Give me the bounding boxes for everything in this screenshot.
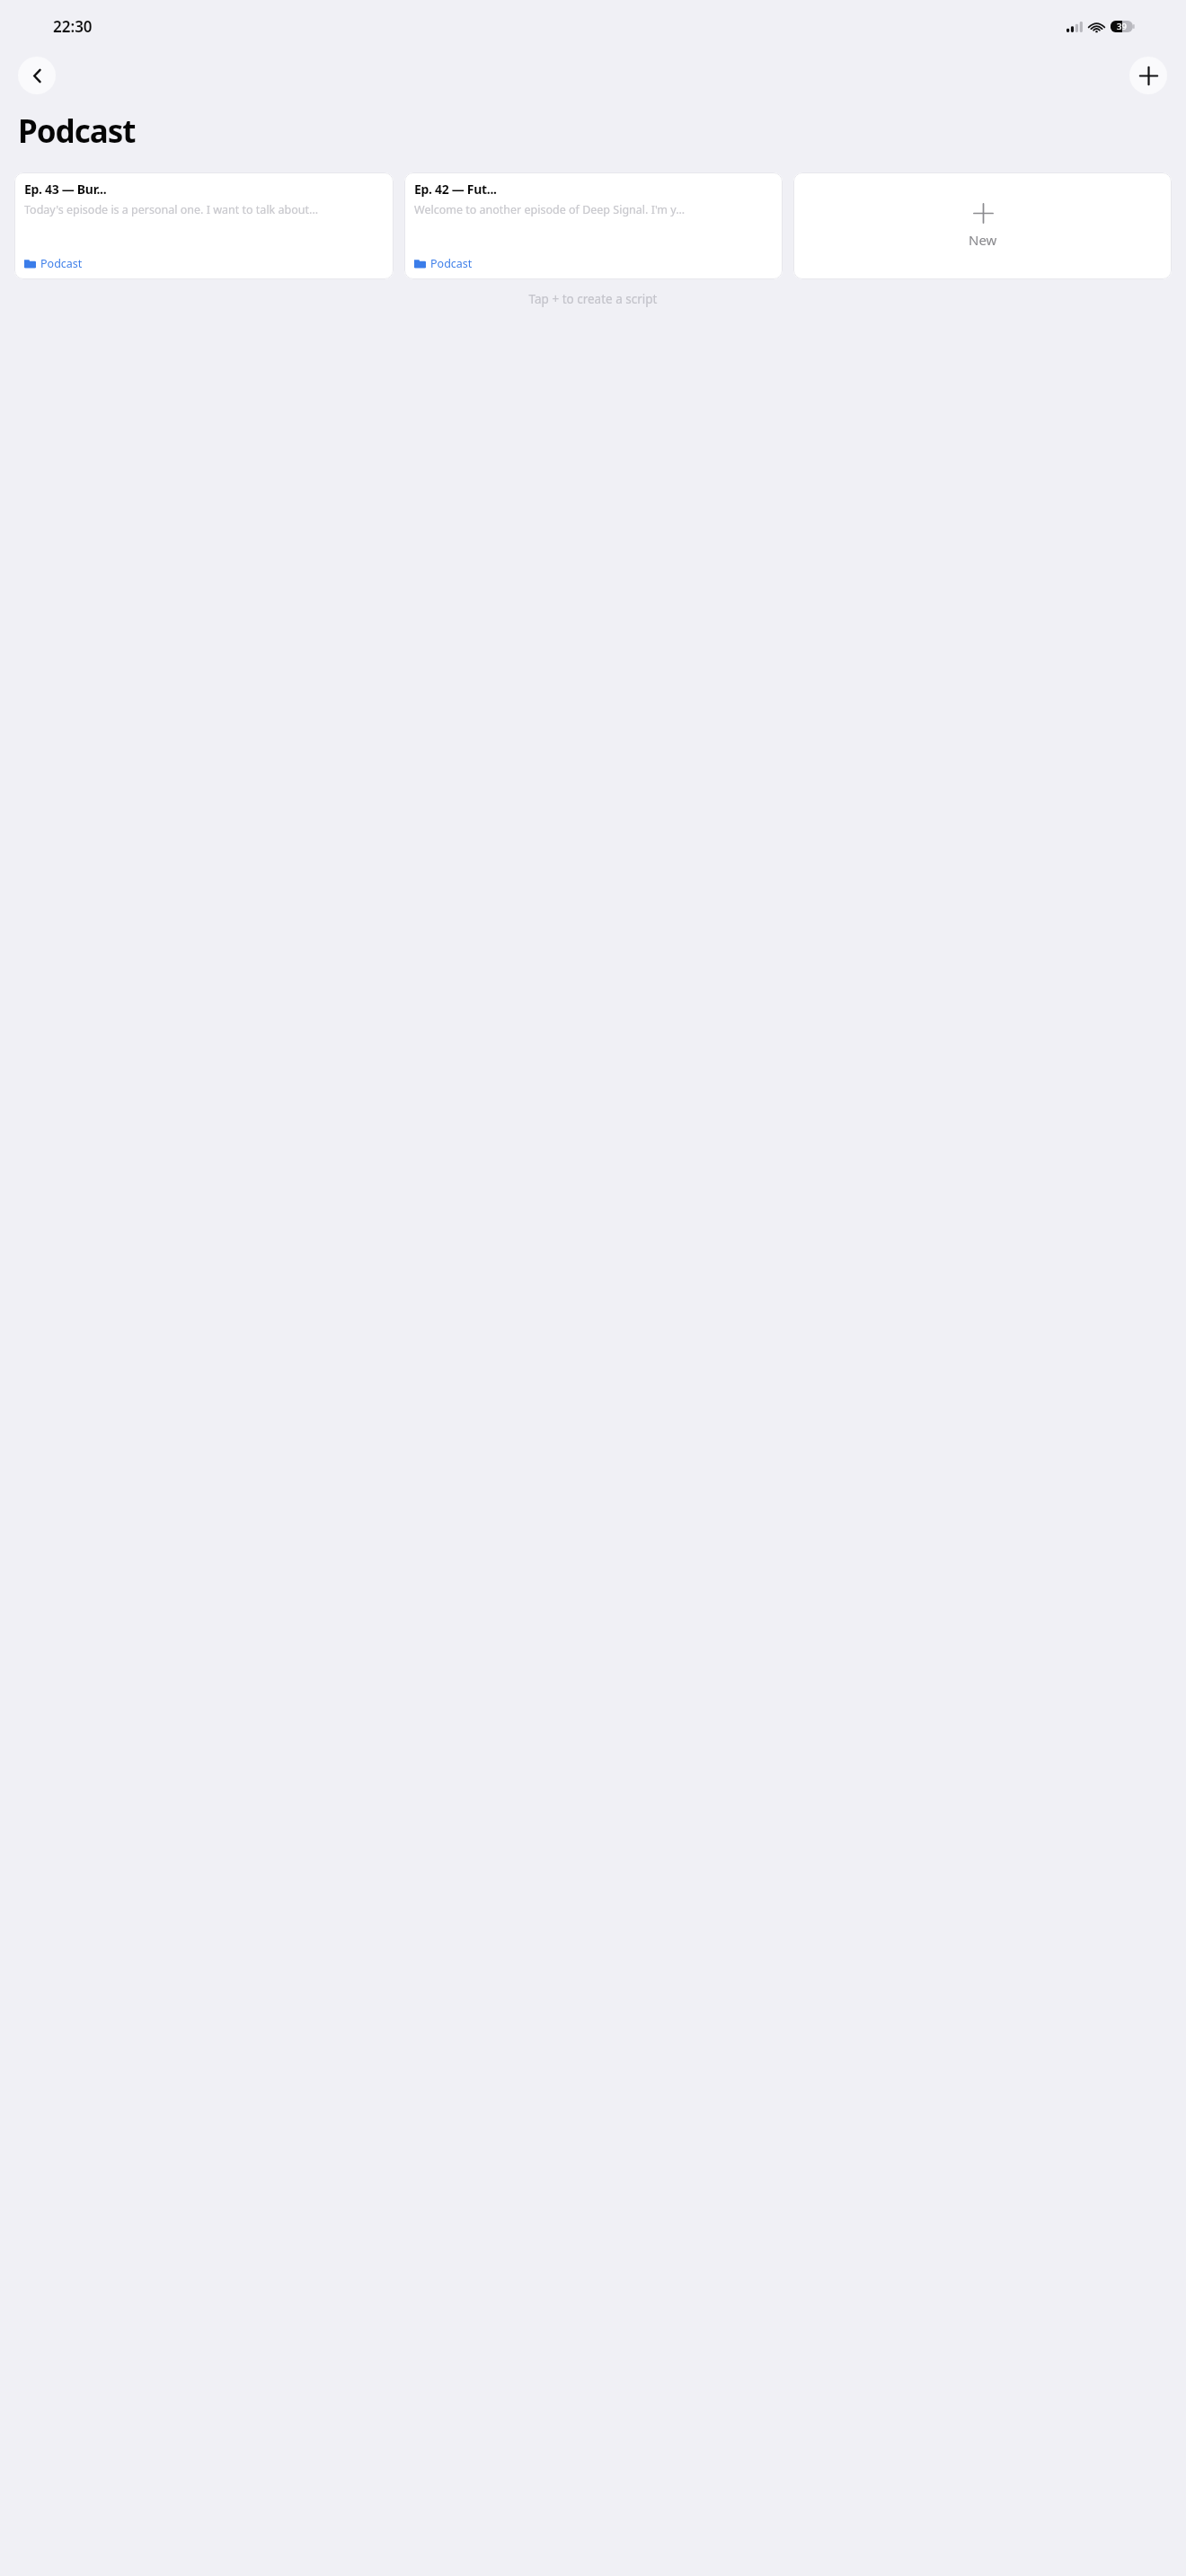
staticText: Today's episode is a personal one. I wan… xyxy=(24,202,319,217)
staticText: New xyxy=(969,231,997,249)
staticText: Podcast xyxy=(18,110,136,153)
button[interactable]: Back xyxy=(18,57,56,94)
staticText: Ep. 42 — Fut... xyxy=(414,181,497,198)
staticText: 22:30 xyxy=(53,16,93,37)
staticText: Ep. 43 — Bur... xyxy=(24,181,107,198)
button[interactable]: New script xyxy=(793,172,1172,279)
button[interactable]: Add script xyxy=(1129,57,1167,94)
staticText: Welcome to another episode of Deep Signa… xyxy=(414,202,686,217)
button[interactable]: Ep. 42 — Fut... xyxy=(404,172,783,279)
staticText: 39 xyxy=(1117,21,1127,32)
staticText: Tap + to create a script xyxy=(0,291,1186,307)
button[interactable]: Ep. 43 — Bur... xyxy=(14,172,394,279)
staticText: Podcast xyxy=(40,256,83,271)
staticText: Podcast xyxy=(430,256,473,271)
